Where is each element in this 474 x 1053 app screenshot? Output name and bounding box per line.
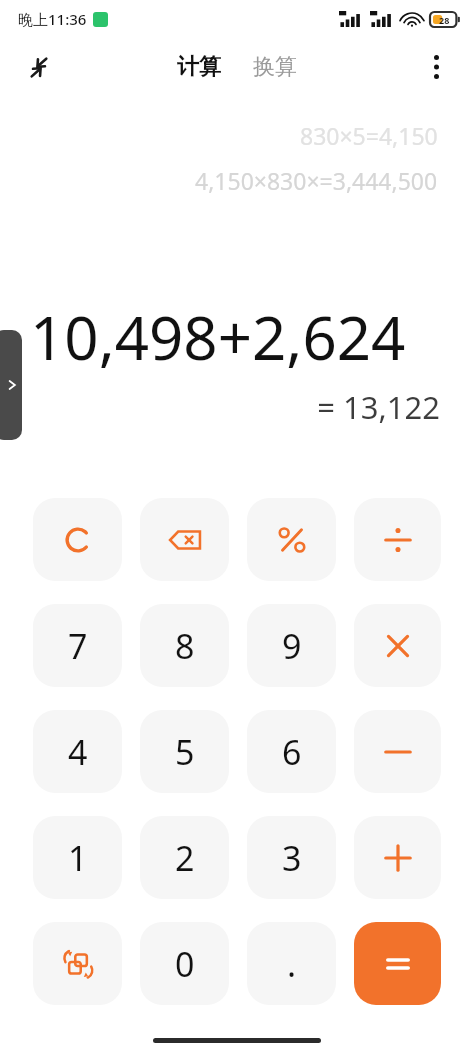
staticText: 晚上11:36 [18,9,87,29]
button[interactable]: 5 [140,710,229,793]
button[interactable]: 换算 [247,49,303,85]
staticText: = 13,122 [30,386,440,428]
button[interactable]: 4 [33,710,122,793]
staticText: 计算 [177,53,221,81]
button[interactable]: . [247,922,336,1005]
button[interactable]: Multiply [354,604,441,687]
button[interactable]: 3 [247,816,336,899]
staticText: . [287,941,297,987]
button[interactable]: 830×5=4,150 [300,120,438,151]
staticText: 7 [68,623,88,669]
button[interactable]: 9 [247,604,336,687]
staticText: 5 [175,729,195,775]
button[interactable]: Clear [33,498,122,581]
button[interactable]: 4,150×830×=3,444,500 [195,165,438,196]
button[interactable]: Backspace [140,498,229,581]
button[interactable]: Collapse [16,44,62,90]
button[interactable]: 0 [140,922,229,1005]
staticText: 0 [175,941,195,987]
button[interactable]: 7 [33,604,122,687]
staticText: 2 [175,835,195,881]
button[interactable]: 2 [140,816,229,899]
staticText: 6 [282,729,302,775]
button[interactable]: More options [414,45,458,89]
button[interactable]: Equals [354,922,441,1005]
staticText: 28 [439,14,450,26]
button[interactable]: Plus [354,816,441,899]
staticText: 10,498+2,624 [30,296,440,378]
button[interactable]: 计算 [171,49,227,85]
button[interactable]: Divide [354,498,441,581]
staticText: 1 [68,835,88,881]
button[interactable]: 6 [247,710,336,793]
button[interactable]: Open history drawer [0,330,22,440]
staticText: 8 [175,623,195,669]
button[interactable]: Minus [354,710,441,793]
button[interactable]: Convert units [33,922,122,1005]
button[interactable]: 1 [33,816,122,899]
staticText: 3 [282,835,302,881]
staticText: 9 [282,623,302,669]
button[interactable]: Percent [247,498,336,581]
staticText: 4 [68,729,88,775]
button[interactable]: 8 [140,604,229,687]
staticText: 换算 [253,53,297,81]
